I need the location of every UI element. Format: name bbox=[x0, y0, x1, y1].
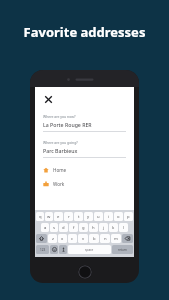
button[interactable]: Numbers bbox=[36, 245, 49, 254]
staticText: 123 bbox=[40, 248, 46, 252]
staticText: Home bbox=[53, 167, 67, 173]
staticText: w bbox=[47, 214, 51, 220]
button[interactable]: p bbox=[124, 212, 133, 221]
staticText: q bbox=[39, 214, 42, 220]
button[interactable]: Shift bbox=[36, 234, 47, 243]
staticText: r bbox=[68, 214, 70, 220]
staticText: Where are you now? bbox=[43, 114, 76, 119]
staticText: Where are you going? bbox=[43, 140, 78, 145]
button[interactable]: Home bbox=[78, 265, 92, 279]
staticText: space bbox=[85, 248, 94, 252]
staticText: g bbox=[82, 225, 85, 231]
staticText: return bbox=[118, 248, 127, 252]
staticText: s bbox=[53, 225, 56, 231]
staticText: o bbox=[117, 214, 120, 220]
button[interactable]: q bbox=[36, 212, 44, 221]
staticText: t bbox=[78, 214, 80, 220]
button[interactable]: Emoji bbox=[50, 245, 58, 254]
button[interactable]: b bbox=[89, 234, 99, 243]
staticText: k bbox=[112, 225, 115, 231]
button[interactable]: Work bbox=[43, 181, 126, 187]
staticText: y bbox=[87, 214, 90, 220]
staticText: b bbox=[93, 236, 96, 242]
button[interactable]: t bbox=[74, 212, 83, 221]
staticText: v bbox=[82, 236, 85, 242]
button[interactable]: k bbox=[109, 223, 118, 232]
button[interactable]: l bbox=[119, 223, 128, 232]
button[interactable]: d bbox=[59, 223, 68, 232]
button[interactable]: c bbox=[68, 234, 77, 243]
staticText: l bbox=[123, 225, 125, 231]
button[interactable]: h bbox=[89, 223, 98, 232]
staticText: La Porte Rouge RER bbox=[43, 121, 92, 128]
staticText: u bbox=[97, 214, 100, 220]
button[interactable]: j bbox=[99, 223, 108, 232]
staticText: e bbox=[57, 214, 60, 220]
button[interactable]: v bbox=[78, 234, 88, 243]
staticText: Favorite addresses bbox=[0, 23, 169, 41]
button[interactable]: Dictate bbox=[59, 245, 67, 254]
button[interactable]: space bbox=[68, 245, 111, 254]
staticText: a bbox=[44, 225, 47, 231]
staticText: x bbox=[61, 236, 64, 242]
staticText: Parc Barbieux bbox=[43, 147, 78, 154]
button[interactable]: z bbox=[48, 234, 57, 243]
button[interactable]: o bbox=[114, 212, 123, 221]
button[interactable]: r bbox=[64, 212, 73, 221]
button[interactable]: n bbox=[100, 234, 110, 243]
staticText: f bbox=[73, 225, 75, 231]
staticText: i bbox=[108, 214, 110, 220]
button[interactable]: m bbox=[111, 234, 121, 243]
button[interactable]: Close bbox=[43, 94, 54, 105]
button[interactable]: Home bbox=[43, 167, 126, 173]
staticText: p bbox=[127, 214, 130, 220]
button[interactable]: u bbox=[94, 212, 103, 221]
staticText: h bbox=[92, 225, 95, 231]
staticText: c bbox=[71, 236, 74, 242]
button[interactable]: s bbox=[50, 223, 58, 232]
button[interactable]: w bbox=[45, 212, 53, 221]
button[interactable]: x bbox=[58, 234, 67, 243]
staticText: n bbox=[104, 236, 107, 242]
button[interactable]: e bbox=[54, 212, 63, 221]
button[interactable]: return bbox=[112, 245, 133, 254]
button[interactable]: Delete bbox=[122, 234, 133, 243]
button[interactable]: g bbox=[79, 223, 88, 232]
staticText: Work bbox=[53, 181, 65, 187]
button[interactable]: f bbox=[69, 223, 78, 232]
staticText: d bbox=[62, 225, 65, 231]
button[interactable]: a bbox=[41, 223, 49, 232]
button[interactable]: Where are you going? bbox=[43, 140, 126, 158]
staticText: j bbox=[103, 225, 105, 231]
button[interactable]: Where are you now? bbox=[43, 114, 126, 132]
staticText: z bbox=[52, 236, 54, 242]
staticText: m bbox=[114, 236, 118, 242]
button[interactable]: y bbox=[84, 212, 93, 221]
button[interactable]: i bbox=[104, 212, 113, 221]
